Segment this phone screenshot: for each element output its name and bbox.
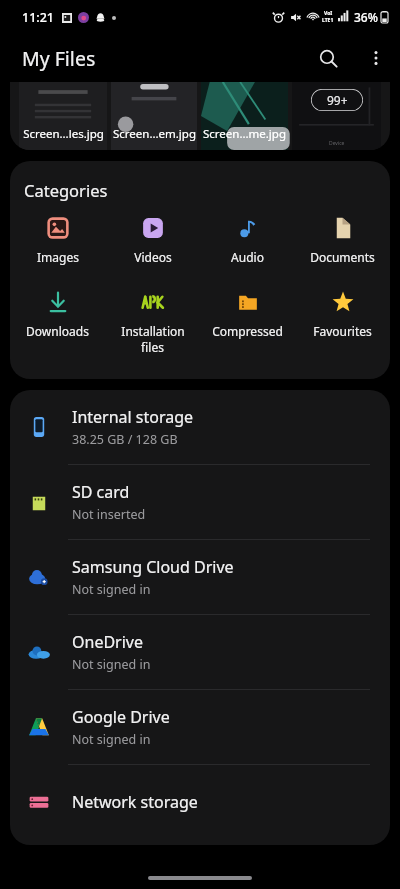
staticText: Audio	[231, 249, 264, 265]
staticText: Installation	[121, 323, 185, 339]
staticText: Screen…me.jpg	[203, 126, 286, 142]
button[interactable]: SD card	[10, 465, 390, 539]
staticText: Not signed in	[72, 731, 151, 748]
staticText: Not signed in	[72, 581, 151, 598]
staticText: Google Drive	[72, 706, 170, 728]
staticText: files	[141, 339, 164, 355]
staticText: Images	[37, 249, 79, 265]
button[interactable]: Network storage	[10, 765, 390, 839]
button[interactable]: More options	[352, 34, 400, 82]
staticText: OneDrive	[72, 631, 143, 653]
staticText: SD card	[72, 481, 130, 503]
button[interactable]: Images	[10, 211, 105, 269]
button[interactable]: Samsung Cloud Drive	[10, 540, 390, 614]
staticText: Samsung Cloud Drive	[72, 556, 234, 578]
staticText: Screen…em.jpg	[113, 126, 196, 142]
button[interactable]: Favourites	[295, 285, 390, 343]
button[interactable]: More files	[292, 82, 381, 150]
button[interactable]: Search	[304, 34, 352, 82]
button[interactable]: Google Drive	[10, 690, 390, 764]
staticText: Screen…les.jpg	[23, 126, 104, 142]
staticText: Documents	[310, 249, 375, 265]
staticText: Downloads	[26, 323, 89, 339]
button[interactable]: OneDrive	[10, 615, 390, 689]
staticText: Network storage	[72, 791, 198, 813]
button[interactable]: Compressed	[200, 285, 295, 343]
button[interactable]: Screen…me.jpg	[201, 82, 288, 150]
staticText: Videos	[134, 249, 172, 265]
button[interactable]: Documents	[295, 211, 390, 269]
staticText: My Files	[22, 45, 96, 72]
button[interactable]: Videos	[105, 211, 200, 269]
staticText: Not inserted	[72, 506, 146, 523]
staticText: Not signed in	[72, 656, 151, 673]
staticText: 11:21	[22, 9, 55, 26]
button[interactable]: Screen…les.jpg	[19, 82, 107, 150]
staticText: Compressed	[212, 323, 283, 339]
staticText: LTE1	[322, 17, 334, 24]
button[interactable]: Installation	[105, 285, 200, 359]
button[interactable]: Downloads	[10, 285, 105, 343]
staticText: VoI	[324, 10, 333, 17]
button[interactable]: Screen…em.jpg	[111, 82, 197, 150]
staticText: 36%	[354, 9, 378, 25]
staticText: Categories	[24, 179, 108, 201]
staticText: Internal storage	[72, 406, 194, 428]
staticText: 38.25 GB / 128 GB	[72, 431, 178, 448]
staticText: 99+	[327, 92, 348, 108]
button[interactable]: Internal storage	[10, 390, 390, 464]
staticText: Device	[329, 140, 345, 147]
button[interactable]: Audio	[200, 211, 295, 269]
staticText: Favourites	[313, 323, 372, 339]
